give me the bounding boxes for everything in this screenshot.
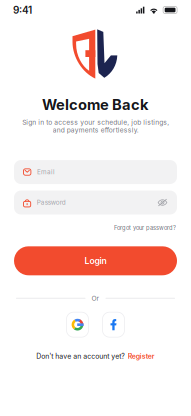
staticText: Sign in to access your schedule, job lis… bbox=[22, 118, 169, 134]
button[interactable]: Sign in with Google bbox=[66, 312, 88, 337]
staticText: Email bbox=[37, 168, 55, 176]
staticText: Or bbox=[91, 294, 99, 302]
button[interactable]: Forgot your password? bbox=[114, 224, 176, 231]
staticText: Don't have an account yet? bbox=[36, 352, 125, 360]
staticText: Register bbox=[128, 352, 155, 360]
staticText: Forgot your password? bbox=[114, 224, 176, 231]
staticText: Password bbox=[37, 199, 66, 206]
staticText: Login bbox=[84, 256, 106, 266]
staticText: Welcome Back bbox=[42, 96, 149, 113]
button[interactable]: Register bbox=[128, 352, 155, 360]
staticText: 9:41 bbox=[13, 4, 32, 16]
button[interactable]: Login bbox=[14, 246, 177, 275]
button[interactable]: Sign in with Facebook bbox=[102, 312, 124, 337]
